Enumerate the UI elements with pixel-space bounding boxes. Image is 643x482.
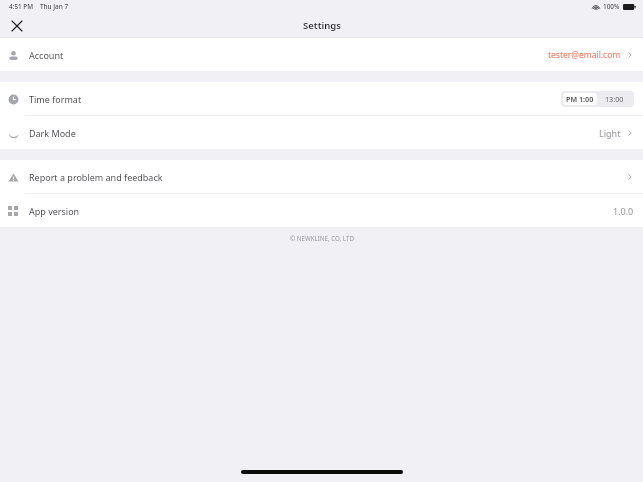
staticText: Thu Jan 7: [40, 2, 69, 11]
staticText: 13:00: [605, 94, 624, 104]
staticText: 4:51 PM: [9, 2, 34, 11]
staticText: Report a problem and feedback: [29, 171, 163, 183]
button[interactable]: 13:00: [597, 93, 632, 105]
staticText: 100%: [603, 2, 620, 11]
button[interactable]: Time format: [0, 82, 643, 115]
button[interactable]: PM 1:00: [563, 93, 597, 105]
staticText: © NEWKLINE, CO, LTD: [290, 234, 354, 242]
button[interactable]: Report a problem and feedback: [0, 160, 643, 193]
staticText: Settings: [303, 19, 341, 32]
staticText: Dark Mode: [29, 127, 76, 139]
button[interactable]: App version: [0, 194, 643, 227]
button[interactable]: Close: [6, 15, 28, 37]
button[interactable]: Dark Mode: [0, 116, 643, 149]
staticText: 1.0.0: [613, 205, 634, 217]
staticText: tester@email.com: [548, 49, 621, 61]
staticText: Account: [29, 49, 64, 61]
staticText: Light: [599, 127, 621, 139]
staticText: Time format: [29, 93, 82, 105]
staticText: App version: [29, 205, 80, 217]
staticText: PM 1:00: [566, 94, 594, 104]
button[interactable]: Account: [0, 38, 643, 71]
